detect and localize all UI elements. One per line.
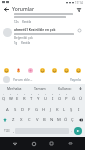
button[interactable]: Ö <box>62 114 69 125</box>
staticText: Beğenildi çok <box>14 36 33 40</box>
button[interactable]: Emoji reaction <box>15 67 22 74</box>
staticText: K <box>56 107 59 113</box>
button[interactable]: I <box>75 103 82 114</box>
button[interactable]: Yanıtla <box>21 41 31 45</box>
button[interactable]: C <box>25 114 33 125</box>
button[interactable]: Merhaba <box>2 84 27 92</box>
button[interactable]: Emoji reaction <box>3 67 10 74</box>
staticText: J <box>50 107 52 113</box>
button[interactable]: Yayınla <box>69 78 82 82</box>
button[interactable]: Emoji reaction <box>39 67 46 74</box>
button[interactable]: Period <box>69 125 73 136</box>
staticText: Yorum ekle... <box>13 78 33 82</box>
button[interactable]: Shift <box>0 114 9 125</box>
button[interactable]: N <box>48 114 55 125</box>
button[interactable]: 7 <box>42 92 49 103</box>
button[interactable]: 1 <box>1 92 7 103</box>
button[interactable]: 5 <box>28 92 35 103</box>
button[interactable]: Yorum ekle... <box>13 78 69 82</box>
staticText: R <box>23 96 26 102</box>
button[interactable]: ?123 <box>2 125 11 136</box>
staticText: P <box>65 96 68 102</box>
button[interactable]: Back <box>3 6 10 13</box>
button[interactable]: Emoji reaction <box>51 67 58 74</box>
button[interactable]: H <box>40 103 47 114</box>
staticText: B <box>43 117 46 123</box>
button[interactable]: K <box>54 103 61 114</box>
staticText: I <box>78 107 80 113</box>
staticText: G <box>35 107 39 113</box>
staticText: ?123 <box>4 129 10 133</box>
button[interactable]: Comma <box>11 125 15 136</box>
button[interactable]: 12s <box>14 20 19 24</box>
button[interactable]: M <box>55 114 62 125</box>
button[interactable]: G <box>33 103 40 114</box>
button[interactable]: X <box>17 114 25 125</box>
staticText: 2 <box>10 93 12 96</box>
button[interactable]: Yanıtla <box>22 20 32 24</box>
button[interactable]: Filter <box>75 6 82 13</box>
button[interactable]: Z <box>9 114 17 125</box>
button[interactable]: Ü <box>77 92 84 103</box>
button[interactable]: Emoji reaction <box>27 67 34 74</box>
staticText: O <box>58 96 62 102</box>
staticText: , <box>13 128 14 133</box>
staticText: ahmet61 Kesinlikle en çok <box>14 28 56 32</box>
button[interactable]: Send <box>73 125 83 136</box>
staticText: Yorumlar <box>12 6 35 13</box>
button[interactable]: ahmet61 Kesinlikle en çok <box>0 27 85 46</box>
button[interactable]: Emoji reaction <box>75 67 82 74</box>
button[interactable]: A <box>3 103 11 114</box>
button[interactable]: L <box>61 103 68 114</box>
button[interactable]: D <box>19 103 26 114</box>
button[interactable]: Tamam <box>27 84 52 92</box>
button[interactable]: 9 <box>56 92 63 103</box>
button[interactable]: 3 <box>14 92 21 103</box>
button[interactable]: Emoji reaction <box>63 67 70 74</box>
button[interactable]: B <box>41 114 48 125</box>
button[interactable]: Ğ <box>70 92 77 103</box>
button[interactable]: S <box>11 103 19 114</box>
staticText: Z <box>12 117 15 123</box>
button[interactable]: 2 <box>7 92 14 103</box>
button[interactable]: J <box>47 103 54 114</box>
staticText: 1 <box>3 93 5 96</box>
staticText: Merhaba <box>7 86 22 91</box>
staticText: N <box>50 117 54 123</box>
button[interactable]: Voice input <box>77 84 83 92</box>
button[interactable]: V <box>33 114 41 125</box>
button[interactable]: Like <box>77 28 82 33</box>
staticText: Ç <box>71 117 74 123</box>
button[interactable]: 6 <box>35 92 42 103</box>
staticText: 5 <box>31 93 33 96</box>
button[interactable]: 0 <box>63 92 70 103</box>
staticText: L <box>63 107 66 113</box>
button[interactable]: Back <box>10 139 19 148</box>
button[interactable]: F <box>26 103 33 114</box>
button[interactable]: Kullanıcı <box>52 84 77 92</box>
button[interactable]: 8 <box>49 92 56 103</box>
staticText: 17:14 <box>75 1 83 5</box>
staticText: Ö <box>64 117 68 123</box>
staticText: H <box>42 107 46 113</box>
staticText: Ü <box>79 96 83 102</box>
staticText: I <box>52 96 54 102</box>
staticText: F <box>28 107 31 113</box>
staticText: D <box>21 107 25 113</box>
button[interactable]: Recents <box>47 139 56 148</box>
button[interactable]: 1g <box>14 41 18 45</box>
button[interactable]: Ş <box>68 103 75 114</box>
staticText: U <box>44 96 48 102</box>
staticText: S <box>14 107 17 113</box>
button[interactable]: Hide keyboard <box>66 139 75 148</box>
button[interactable]: Backspace <box>76 114 85 125</box>
staticText: Ğ <box>72 96 76 102</box>
staticText: 3 <box>17 93 19 96</box>
staticText: 9 <box>59 93 61 96</box>
button[interactable]: 4 <box>21 92 28 103</box>
staticText: Y <box>37 96 40 102</box>
button[interactable]: Home <box>29 139 38 148</box>
staticText: Ş <box>70 107 73 113</box>
button[interactable]: Ç <box>69 114 76 125</box>
